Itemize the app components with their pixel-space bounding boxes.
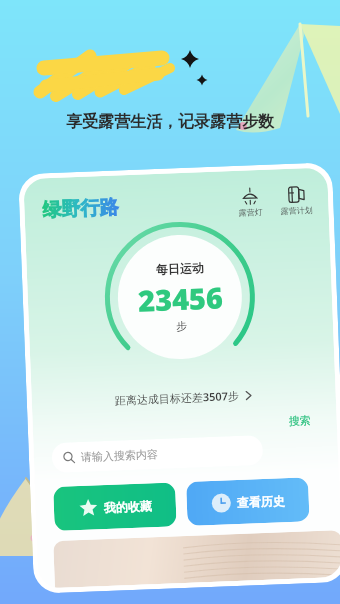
button[interactable] xyxy=(53,530,340,588)
button[interactable]: 查看历史 xyxy=(186,477,310,526)
staticText: 步 xyxy=(176,319,187,333)
button[interactable]: 距离达成目标还差3507步 xyxy=(108,384,259,411)
staticText: 距离达成目标还差3507步 xyxy=(114,388,240,408)
button[interactable]: 请输入搜索内容 xyxy=(51,435,263,473)
staticText: 露营灯 xyxy=(238,207,263,218)
staticText: 每日运动 xyxy=(155,260,204,277)
staticText: 享受露营生活，记录露营步数 xyxy=(66,112,274,132)
staticText: 绿野行路 xyxy=(42,195,119,222)
staticText: 请输入搜索内容 xyxy=(81,447,158,464)
button[interactable]: 我的收藏 xyxy=(53,482,177,531)
staticText: 我的收藏 xyxy=(104,498,152,515)
button[interactable]: 露营灯 xyxy=(236,186,265,219)
button[interactable]: 露营计划 xyxy=(278,184,315,217)
staticText: 搜索 xyxy=(288,413,311,428)
staticText: 查看历史 xyxy=(236,493,285,510)
button[interactable]: 搜索 xyxy=(284,411,315,430)
staticText: 露营计划 xyxy=(280,205,313,216)
staticText: 23456 xyxy=(137,277,224,320)
